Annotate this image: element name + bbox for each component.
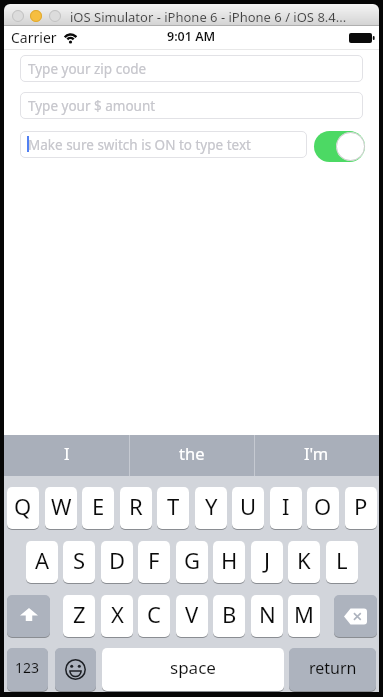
staticText: I xyxy=(64,442,70,464)
button[interactable]: Type your $ amount xyxy=(20,92,363,119)
staticText: Make sure switch is ON to type text xyxy=(28,136,251,154)
button[interactable] xyxy=(12,10,24,22)
staticText: X xyxy=(111,599,124,629)
button[interactable]: Make sure switch is ON to type text xyxy=(20,131,307,158)
button[interactable]: J xyxy=(251,541,283,583)
staticText: E xyxy=(92,491,105,521)
button[interactable] xyxy=(334,595,377,637)
button[interactable]: A xyxy=(26,541,58,583)
staticText: J xyxy=(264,545,271,575)
button[interactable] xyxy=(7,595,50,637)
staticText: Q xyxy=(14,491,32,521)
staticText: W xyxy=(51,491,72,521)
staticText: T xyxy=(167,491,180,521)
button[interactable]: I xyxy=(270,487,302,529)
button[interactable]: O xyxy=(307,487,339,529)
button[interactable]: N xyxy=(251,595,283,637)
button[interactable]: Z xyxy=(63,595,95,637)
button[interactable] xyxy=(49,10,61,22)
staticText: iOS Simulator - iPhone 6 - iPhone 6 / iO… xyxy=(70,8,347,26)
button[interactable]: Q xyxy=(7,487,39,529)
button[interactable]: W xyxy=(45,487,77,529)
staticText: I xyxy=(282,491,290,521)
staticText: Z xyxy=(73,599,86,629)
staticText: A xyxy=(35,545,50,575)
staticText: G xyxy=(184,545,201,575)
staticText: P xyxy=(354,491,368,521)
staticText: B xyxy=(222,599,237,629)
button[interactable]: Type your zip code xyxy=(20,55,363,82)
button[interactable]: space xyxy=(102,648,284,691)
button[interactable]: V xyxy=(176,595,208,637)
button[interactable]: P xyxy=(345,487,377,529)
button[interactable]: I'm xyxy=(254,432,379,473)
button[interactable]: I xyxy=(4,432,129,473)
button[interactable]: D xyxy=(101,541,133,583)
button[interactable]: R xyxy=(120,487,152,529)
button[interactable]: T xyxy=(157,487,189,529)
staticText: 123 xyxy=(15,658,40,677)
button[interactable]: E xyxy=(82,487,114,529)
staticText: V xyxy=(185,599,199,629)
button[interactable]: H xyxy=(213,541,245,583)
button[interactable]: F xyxy=(138,541,170,583)
staticText: H xyxy=(221,545,238,575)
staticText: F xyxy=(148,545,160,575)
button[interactable]: C xyxy=(138,595,170,637)
staticText: 9:01 AM xyxy=(167,28,216,44)
staticText: the xyxy=(179,442,205,464)
staticText: I'm xyxy=(304,442,329,464)
staticText: U xyxy=(240,491,257,521)
staticText: return xyxy=(309,657,357,679)
button[interactable]: K xyxy=(288,541,320,583)
staticText: Type your zip code xyxy=(28,60,147,78)
staticText: R xyxy=(129,491,143,521)
button[interactable] xyxy=(30,10,42,22)
staticText: M xyxy=(294,599,314,629)
staticText: K xyxy=(297,545,311,575)
staticText: Y xyxy=(205,491,218,521)
button[interactable]: G xyxy=(176,541,208,583)
button[interactable]: X xyxy=(101,595,133,637)
staticText: Type your $ amount xyxy=(28,97,156,115)
button[interactable]: L xyxy=(326,541,358,583)
button[interactable]: 123 xyxy=(7,648,48,691)
button[interactable]: M xyxy=(288,595,320,637)
staticText: D xyxy=(109,545,126,575)
button[interactable]: Y xyxy=(195,487,227,529)
button[interactable]: U xyxy=(232,487,264,529)
staticText: L xyxy=(336,545,348,575)
button[interactable]: B xyxy=(213,595,245,637)
button[interactable]: the xyxy=(129,432,254,473)
button[interactable] xyxy=(55,648,96,691)
staticText: space xyxy=(170,656,216,679)
staticText: N xyxy=(259,599,276,629)
button[interactable]: S xyxy=(63,541,95,583)
button[interactable] xyxy=(314,131,365,162)
staticText: Carrier xyxy=(11,28,57,47)
button[interactable]: return xyxy=(289,648,376,691)
staticText: O xyxy=(314,491,332,521)
staticText: S xyxy=(73,545,86,575)
staticText: C xyxy=(147,599,161,629)
